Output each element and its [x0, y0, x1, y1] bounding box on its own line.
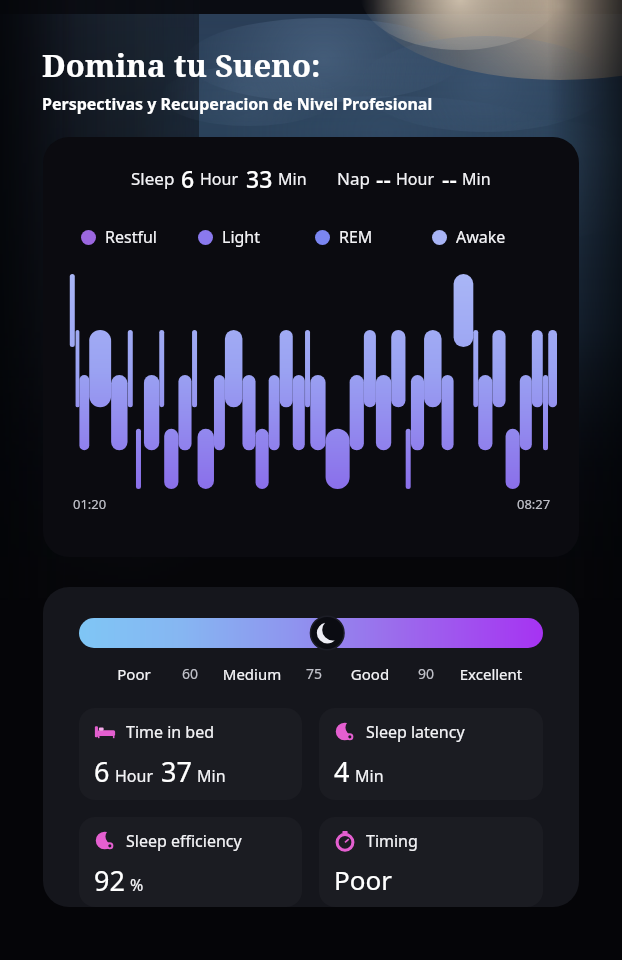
button[interactable]: Sleep score gauge — [79, 618, 543, 648]
staticText: 4 — [334, 753, 350, 790]
staticText: Min — [462, 168, 491, 190]
staticText: Sleep efficiency — [126, 830, 242, 852]
button[interactable]: Time in bed — [79, 708, 302, 800]
staticText: Awake — [456, 226, 506, 248]
button[interactable]: Timing — [319, 817, 543, 907]
staticText: 6 — [181, 163, 195, 194]
staticText: 6 — [94, 753, 110, 790]
button[interactable]: Sleep efficiency — [79, 817, 302, 907]
other: Sleep latency — [334, 721, 356, 743]
staticText: 90 — [401, 664, 451, 683]
button[interactable]: Sleep — [43, 137, 579, 557]
staticText: Min — [278, 168, 307, 190]
staticText: Hour — [396, 168, 435, 190]
staticText: 75 — [289, 664, 339, 683]
button[interactable]: Sleep latency — [319, 708, 543, 800]
staticText: 92 — [94, 862, 125, 899]
other: Time in bed — [94, 721, 116, 743]
staticText: Nap — [337, 167, 370, 190]
staticText: Perspectivas y Recuperacion de Nivel Pro… — [42, 93, 433, 115]
staticText: Time in bed — [126, 721, 215, 743]
staticText: 01:20 — [73, 495, 107, 513]
staticText: Min — [197, 765, 226, 787]
staticText: Medium — [215, 664, 289, 684]
staticText: Hour — [200, 168, 239, 190]
other: Timing — [334, 830, 356, 852]
staticText: 08:27 — [517, 495, 551, 513]
staticText: Excellent — [451, 664, 531, 684]
staticText: 60 — [165, 664, 215, 683]
staticText: Timing — [366, 830, 418, 852]
staticText: Domina tu Sueno: — [42, 44, 321, 86]
staticText: Min — [355, 765, 384, 787]
staticText: Sleep — [131, 167, 175, 190]
staticText: Hour — [115, 765, 154, 787]
staticText: -- — [376, 163, 391, 194]
staticText: 37 — [161, 753, 192, 790]
staticText: % — [130, 874, 144, 896]
staticText: -- — [442, 163, 457, 194]
staticText: Poor — [103, 664, 165, 684]
staticText: 33 — [246, 163, 273, 194]
staticText: Poor — [334, 862, 392, 897]
staticText: Good — [339, 664, 401, 684]
staticText: Restful — [105, 226, 157, 248]
staticText: Light — [222, 226, 261, 248]
other: Sleep efficiency — [94, 830, 116, 852]
staticText: Sleep latency — [366, 721, 465, 743]
staticText: REM — [339, 226, 373, 248]
